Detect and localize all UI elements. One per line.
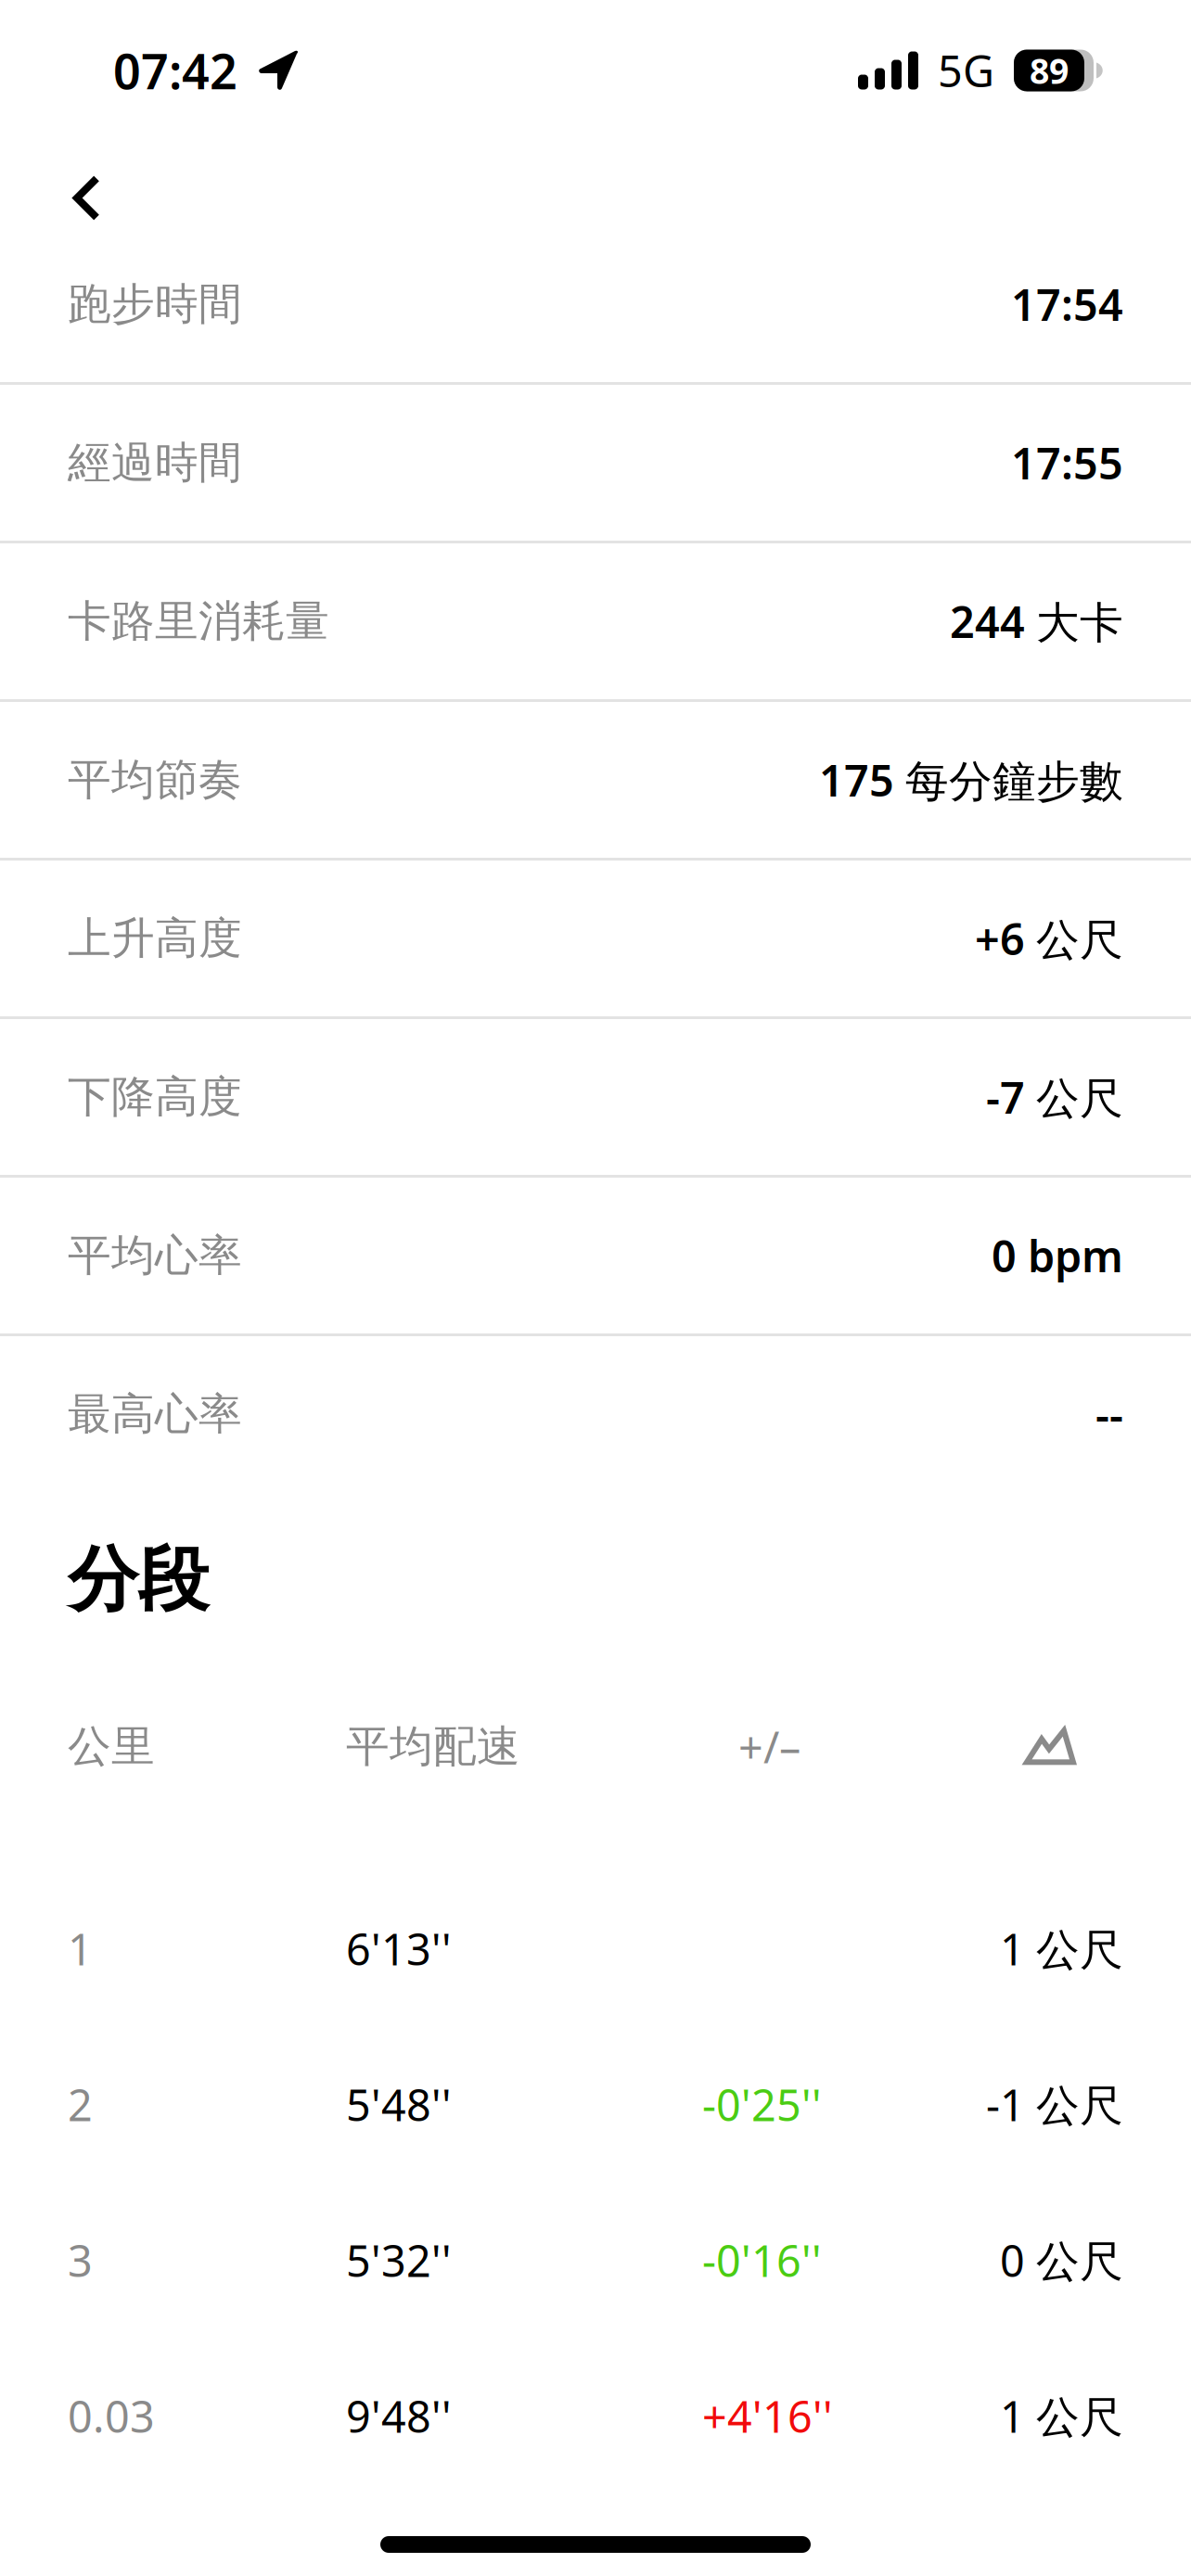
staticText: 5G — [938, 42, 994, 99]
staticText: -7 公尺 — [986, 1068, 1123, 1126]
button[interactable]: 卡路里消耗量 — [0, 543, 1191, 699]
staticText: 1 公尺 — [1000, 2387, 1123, 2445]
button[interactable]: 3 — [0, 2182, 1191, 2338]
staticText: 175 每分鐘步數 — [819, 751, 1123, 809]
button[interactable]: 最高心率 — [0, 1336, 1191, 1492]
staticText: 244 大卡 — [950, 593, 1123, 650]
staticText: 5'48'' — [346, 2076, 452, 2133]
staticText: 平均心率 — [68, 1229, 242, 1282]
staticText: 07:42 — [113, 38, 237, 103]
staticText: 下降高度 — [68, 1070, 242, 1123]
staticText: 平均配速 — [346, 1720, 520, 1773]
button[interactable]: 2 — [0, 2026, 1191, 2182]
staticText: 跑步時間 — [68, 278, 242, 331]
staticText: +/– — [738, 1718, 800, 1775]
staticText: 0.03 — [68, 2387, 155, 2445]
button[interactable]: 跑步時間 — [0, 226, 1191, 382]
staticText: 89 — [1030, 47, 1069, 93]
staticText: 9'48'' — [346, 2387, 452, 2445]
staticText: 6'13'' — [346, 1920, 452, 1977]
staticText: -1 公尺 — [986, 2076, 1123, 2133]
staticText: 分段 — [68, 1537, 209, 1623]
staticText: 卡路里消耗量 — [68, 595, 329, 648]
staticText: +4'16'' — [702, 2387, 833, 2445]
button[interactable]: 平均心率 — [0, 1178, 1191, 1333]
staticText: 0 公尺 — [1000, 2231, 1123, 2289]
staticText: +6 公尺 — [975, 910, 1123, 967]
staticText: -0'25'' — [702, 2076, 822, 2133]
staticText: 最高心率 — [68, 1387, 242, 1441]
staticText: 3 — [68, 2231, 93, 2289]
staticText: -0'16'' — [702, 2231, 822, 2289]
staticText: 平均節奏 — [68, 753, 242, 806]
button[interactable]: 經過時間 — [0, 385, 1191, 541]
button[interactable]: 上升高度 — [0, 861, 1191, 1016]
staticText: 1 公尺 — [1000, 1920, 1123, 1977]
staticText: 上升高度 — [68, 912, 242, 965]
staticText: 5'32'' — [346, 2231, 452, 2289]
button[interactable]: Back — [0, 142, 149, 225]
button[interactable]: 平均節奏 — [0, 702, 1191, 858]
staticText: 公里 — [68, 1720, 155, 1773]
staticText: 2 — [68, 2076, 93, 2133]
staticText: 0 bpm — [992, 1227, 1123, 1284]
button[interactable]: 0.03 — [0, 2338, 1191, 2494]
staticText: 17:54 — [1011, 275, 1123, 333]
button[interactable]: 下降高度 — [0, 1019, 1191, 1175]
staticText: -- — [1095, 1385, 1123, 1443]
staticText: 1 — [68, 1920, 93, 1977]
button[interactable]: 1 — [0, 1871, 1191, 2026]
staticText: 17:55 — [1011, 434, 1123, 491]
staticText: 經過時間 — [68, 436, 242, 489]
